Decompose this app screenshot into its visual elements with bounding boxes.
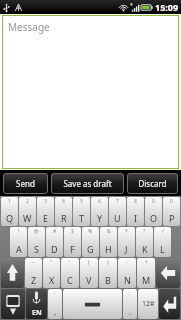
staticText: * (125, 228, 128, 235)
staticText: ) (107, 259, 109, 266)
staticText: . (129, 306, 132, 317)
staticText: 3 (44, 198, 47, 205)
button[interactable]: Backspace (156, 258, 180, 288)
staticText: O (150, 212, 158, 224)
staticText: Message (8, 20, 50, 34)
button[interactable]: 9 (145, 197, 162, 226)
button[interactable]: Discard (127, 173, 178, 194)
button[interactable]: " (43, 258, 60, 288)
button[interactable]: ? (136, 227, 153, 257)
staticText: Discard (138, 178, 167, 189)
button[interactable]: Message body (2, 15, 179, 169)
staticText: - (126, 259, 128, 266)
staticText: @ (34, 228, 39, 235)
button[interactable]: Enter (159, 289, 180, 319)
staticText: : (54, 290, 56, 297)
staticText: Z (31, 274, 37, 286)
button[interactable]: : (48, 289, 62, 319)
staticText: ~ (32, 259, 35, 266)
button[interactable]: + (137, 258, 155, 288)
staticText: 0 (170, 198, 173, 205)
staticText: N (124, 274, 131, 286)
staticText: G (87, 243, 94, 255)
staticText: 7 (116, 198, 119, 205)
staticText: 9 (152, 198, 155, 205)
staticText: 4 (62, 198, 65, 205)
button[interactable]: 0 (163, 197, 180, 226)
staticText: $ (71, 228, 74, 235)
staticText: U (114, 212, 121, 224)
button[interactable]: $ (64, 227, 81, 257)
staticText: E (43, 212, 49, 224)
button[interactable]: Save as draft (51, 173, 124, 194)
button[interactable]: ' (61, 258, 79, 288)
button[interactable]: Voice input, English (26, 289, 47, 319)
button[interactable]: Send (3, 173, 48, 194)
staticText: W (23, 212, 32, 224)
staticText: R (61, 212, 67, 224)
button[interactable]: Shift (1, 258, 24, 288)
staticText: T (79, 212, 85, 224)
staticText: H (105, 243, 112, 255)
staticText: Save as draft (63, 178, 112, 189)
staticText: A (16, 243, 22, 255)
staticText: L (160, 243, 165, 255)
staticText: + (145, 259, 148, 266)
staticText: P (169, 212, 175, 224)
button[interactable]: Space (63, 289, 122, 319)
staticText: D (51, 243, 58, 255)
staticText: Y (97, 212, 103, 224)
staticText: I (134, 212, 138, 224)
button[interactable]: Hide keyboard (1, 289, 25, 319)
staticText: & (107, 228, 111, 235)
button[interactable]: 7 (109, 197, 126, 226)
staticText: S (34, 243, 39, 255)
button[interactable]: 2 (19, 197, 36, 226)
staticText: C (67, 274, 73, 286)
staticText: 12# (142, 299, 155, 309)
button[interactable]: & (100, 227, 117, 257)
staticText: / (162, 228, 164, 235)
staticText: V (86, 274, 92, 286)
staticText: Q (6, 212, 14, 224)
button[interactable]: * (118, 227, 135, 257)
staticText: EN (32, 308, 42, 318)
button[interactable]: @ (28, 227, 45, 257)
staticText: ( (88, 259, 90, 266)
button[interactable]: ! (10, 227, 27, 257)
staticText: 15:09 (155, 1, 179, 13)
staticText: 5 (80, 198, 83, 205)
staticText: ? (143, 228, 146, 235)
staticText: ! (18, 228, 20, 235)
staticText: M (142, 274, 151, 286)
staticText: # (53, 228, 57, 235)
staticText: B (105, 274, 111, 286)
button[interactable]: 1 (1, 197, 18, 226)
staticText: 1 (8, 198, 11, 205)
staticText: 8 (134, 198, 137, 205)
button[interactable]: ) (99, 258, 117, 288)
staticText: F (70, 243, 75, 255)
button[interactable]: 12# (138, 289, 158, 319)
staticText: Send (16, 178, 35, 189)
button[interactable]: / (154, 227, 171, 257)
staticText: , (54, 306, 57, 317)
button[interactable]: : (123, 289, 137, 319)
staticText: 2 (26, 198, 29, 205)
button[interactable]: 5 (73, 197, 90, 226)
button[interactable]: 6 (91, 197, 108, 226)
staticText: J (125, 243, 128, 255)
button[interactable]: # (46, 227, 63, 257)
button[interactable]: % (82, 227, 99, 257)
button[interactable]: 8 (127, 197, 144, 226)
staticText: ' (69, 259, 71, 266)
button[interactable]: ~ (25, 258, 42, 288)
staticText: K (142, 243, 148, 255)
button[interactable]: 4 (55, 197, 72, 226)
staticText: : (129, 290, 131, 297)
button[interactable]: - (118, 258, 136, 288)
button[interactable]: 3 (37, 197, 54, 226)
button[interactable]: ( (80, 258, 98, 288)
staticText: X (49, 274, 55, 286)
staticText: 6 (98, 198, 101, 205)
